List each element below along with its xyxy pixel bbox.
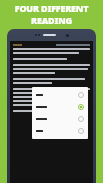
button[interactable] bbox=[32, 125, 88, 137]
staticText: FOUR DIFFERENT READING bbox=[0, 2, 103, 26]
staticText: LAYOUTS bbox=[0, 26, 103, 38]
button[interactable] bbox=[32, 89, 88, 101]
button[interactable] bbox=[32, 113, 88, 125]
button[interactable] bbox=[10, 41, 93, 48]
button[interactable] bbox=[32, 101, 88, 113]
